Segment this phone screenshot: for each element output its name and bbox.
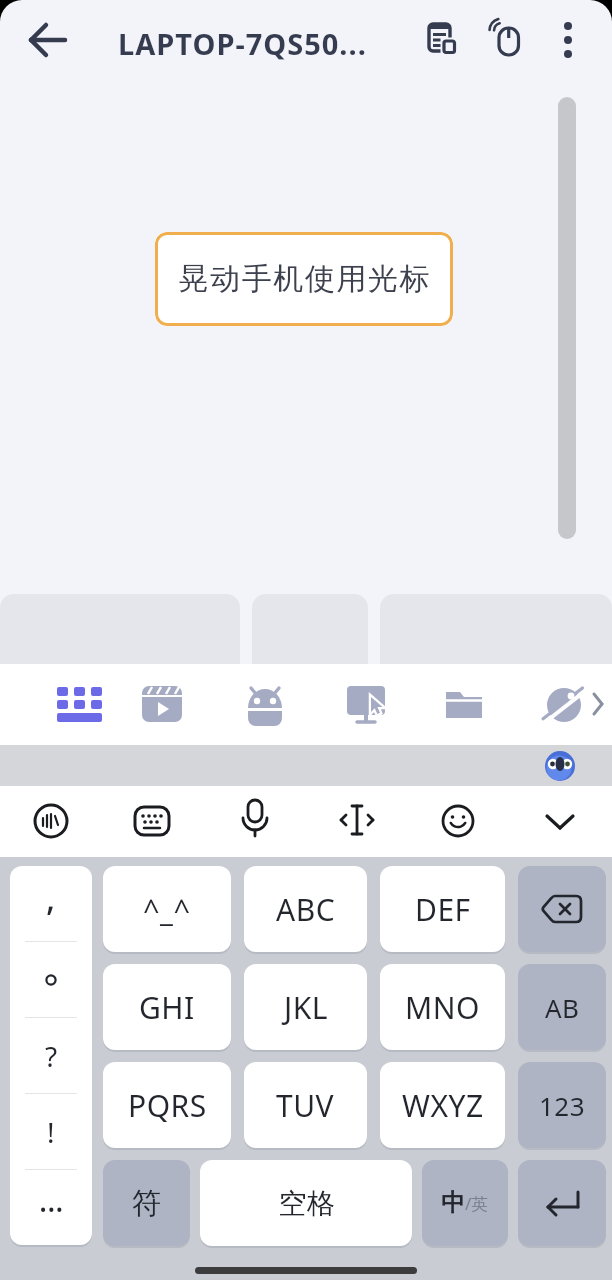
staticText: ! [47,1113,55,1151]
staticText: ^_^ [143,890,191,929]
button[interactable] [544,684,590,726]
staticText: 空格 [278,1186,335,1221]
staticText: PQRS [128,1085,207,1126]
button[interactable]: TUV [244,1062,367,1148]
staticText: ... [39,1180,64,1221]
button[interactable]: AB [518,964,606,1050]
button[interactable]: ABC [244,866,367,952]
button[interactable]: ... [10,1170,92,1245]
staticText: 中 [441,1188,465,1218]
button[interactable]: 空格 [200,1160,412,1246]
button[interactable] [438,801,478,841]
button[interactable] [420,19,464,63]
staticText: GHI [139,987,195,1028]
button[interactable]: DEF [380,866,505,952]
staticText: MNO [405,987,480,1028]
button[interactable]: WXYZ [380,1062,505,1148]
button[interactable]: GHI [103,964,231,1050]
staticText: /英 [465,1192,489,1215]
button[interactable] [10,942,92,1017]
staticText: JKL [284,987,328,1028]
button[interactable] [235,798,275,844]
staticText: TUV [276,1085,335,1126]
button[interactable]: ! [10,1094,92,1169]
button[interactable]: ^_^ [103,866,231,952]
staticText: WXYZ [402,1085,484,1126]
staticText: LAPTOP-7QS50... [118,24,367,63]
button[interactable] [31,801,71,841]
button[interactable] [57,685,101,725]
button[interactable] [485,19,529,63]
button[interactable] [444,686,484,722]
button[interactable]: 符 [103,1160,190,1246]
staticText: AB [545,990,580,1025]
button[interactable]: PQRS [103,1062,231,1148]
button[interactable] [24,16,72,64]
staticText: DEF [415,889,471,930]
button[interactable]: 中 [422,1160,508,1246]
button[interactable] [345,684,389,726]
button[interactable]: MNO [380,964,505,1050]
button[interactable] [132,801,172,841]
button[interactable] [337,800,377,842]
button[interactable]: JKL [244,964,367,1050]
staticText: 123 [539,1088,586,1123]
button[interactable]: 123 [518,1062,606,1148]
button[interactable] [140,684,184,724]
button[interactable] [546,18,590,62]
staticText: , [46,875,56,921]
button[interactable] [243,683,287,725]
staticText: 晃动手机使用光标 [178,260,430,298]
staticText: 符 [132,1185,162,1222]
button[interactable] [518,866,606,952]
button[interactable] [518,1160,606,1246]
button[interactable]: ? [10,1018,92,1093]
staticText: ? [45,1037,58,1075]
button[interactable] [540,801,580,841]
staticText: ABC [276,889,336,930]
button[interactable]: , [10,866,92,941]
